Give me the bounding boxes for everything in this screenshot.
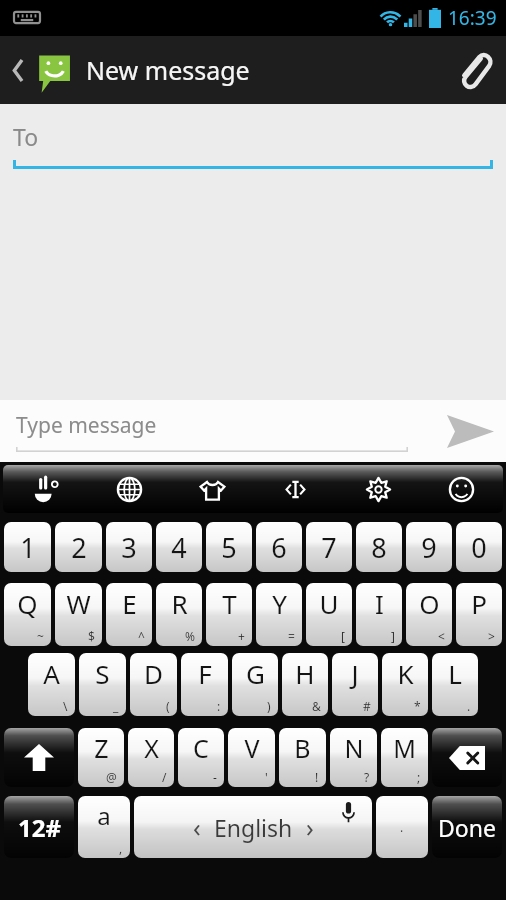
staticText: ‹ (193, 810, 201, 844)
staticText: 7 (321, 529, 337, 566)
button[interactable]: Language (87, 465, 171, 513)
button[interactable]: P (456, 583, 502, 646)
staticText: ? (364, 769, 370, 785)
button[interactable]: 4 (156, 522, 202, 572)
staticText: C (193, 731, 209, 765)
button[interactable]: Handwriting (3, 465, 87, 513)
staticText: R (171, 586, 188, 621)
staticText: A (43, 656, 60, 691)
staticText: 6 (271, 529, 287, 566)
staticText: 16:39 (448, 5, 497, 31)
staticText: ^ (138, 628, 145, 644)
button[interactable]: N (330, 728, 377, 787)
button[interactable]: E (106, 583, 152, 646)
staticText: ' (265, 769, 268, 785)
staticText: U (319, 586, 339, 621)
button[interactable]: Q (4, 583, 51, 646)
staticText: . (467, 698, 471, 714)
staticText: G (246, 656, 265, 691)
staticText: Q (17, 586, 38, 621)
staticText: English (214, 812, 293, 843)
button[interactable]: Y (256, 583, 302, 646)
staticText: : (217, 698, 221, 714)
button[interactable]: Attach (440, 36, 506, 104)
staticText: ! (315, 769, 319, 785)
button[interactable]: M (381, 728, 428, 787)
staticText: O (419, 586, 440, 621)
staticText: Type message (16, 411, 157, 440)
staticText: % (185, 628, 195, 644)
button[interactable]: Z (78, 728, 124, 787)
staticText: ; (417, 769, 421, 785)
button[interactable]: To (13, 121, 493, 169)
staticText: a (97, 799, 111, 832)
button[interactable]: Cursor control (254, 465, 337, 513)
button[interactable]: K (382, 653, 428, 716)
button[interactable]: Space, English (134, 796, 372, 858)
button[interactable]: . (376, 796, 428, 858)
staticText: To (13, 121, 39, 152)
button[interactable]: I (356, 583, 402, 646)
button[interactable]: 5 (206, 522, 252, 572)
button[interactable]: 7 (306, 522, 352, 572)
staticText: P (471, 586, 487, 621)
button[interactable]: 0 (456, 522, 502, 572)
button[interactable]: a (78, 796, 130, 858)
staticText: N (344, 731, 364, 765)
button[interactable]: G (232, 653, 278, 716)
button[interactable]: Type message (16, 411, 408, 452)
button[interactable]: T (206, 583, 252, 646)
staticText: Done (438, 812, 496, 843)
button[interactable]: 3 (106, 522, 152, 572)
staticText: 2 (71, 529, 87, 566)
button[interactable]: Symbols (4, 796, 74, 858)
staticText: = (288, 628, 295, 644)
staticText: & (312, 698, 321, 714)
button[interactable]: 6 (256, 522, 302, 572)
staticText: L (448, 656, 462, 691)
button[interactable]: 9 (406, 522, 452, 572)
staticText: ) (267, 698, 271, 714)
button[interactable]: Done (432, 796, 502, 858)
button[interactable]: Backspace (432, 728, 502, 787)
button[interactable]: D (130, 653, 177, 716)
button[interactable]: 1 (4, 522, 51, 572)
button[interactable]: O (406, 583, 452, 646)
button[interactable]: S (79, 653, 126, 716)
staticText: ] (391, 628, 395, 644)
staticText: B (294, 731, 311, 765)
button[interactable]: J (332, 653, 378, 716)
button[interactable]: Send (434, 400, 506, 462)
button[interactable]: C (178, 728, 224, 787)
staticText: T (222, 586, 237, 621)
button[interactable]: Settings (337, 465, 420, 513)
staticText: - (213, 769, 217, 785)
button[interactable]: X (128, 728, 174, 787)
button[interactable]: New message (5, 42, 250, 98)
button[interactable]: U (306, 583, 352, 646)
button[interactable]: Shift (4, 728, 74, 787)
staticText: + (238, 628, 245, 644)
staticText: ( (166, 698, 170, 714)
button[interactable]: A (28, 653, 75, 716)
button[interactable]: V (228, 728, 275, 787)
button[interactable]: 2 (55, 522, 102, 572)
button[interactable]: Theme (171, 465, 254, 513)
button[interactable]: F (181, 653, 228, 716)
staticText: # (363, 698, 371, 714)
button[interactable]: L (432, 653, 478, 716)
button[interactable]: W (55, 583, 102, 646)
staticText: / (162, 769, 167, 785)
staticText: @ (106, 769, 117, 785)
staticText: , (119, 840, 123, 856)
staticText: I (375, 586, 384, 621)
staticText: E (122, 586, 137, 621)
button[interactable]: R (156, 583, 202, 646)
button[interactable]: 8 (356, 522, 402, 572)
button[interactable]: H (282, 653, 328, 716)
staticText: › (306, 810, 314, 844)
button[interactable]: B (279, 728, 326, 787)
staticText: 8 (371, 529, 387, 566)
staticText: ~ (37, 628, 44, 644)
button[interactable]: Emoji (420, 465, 503, 513)
